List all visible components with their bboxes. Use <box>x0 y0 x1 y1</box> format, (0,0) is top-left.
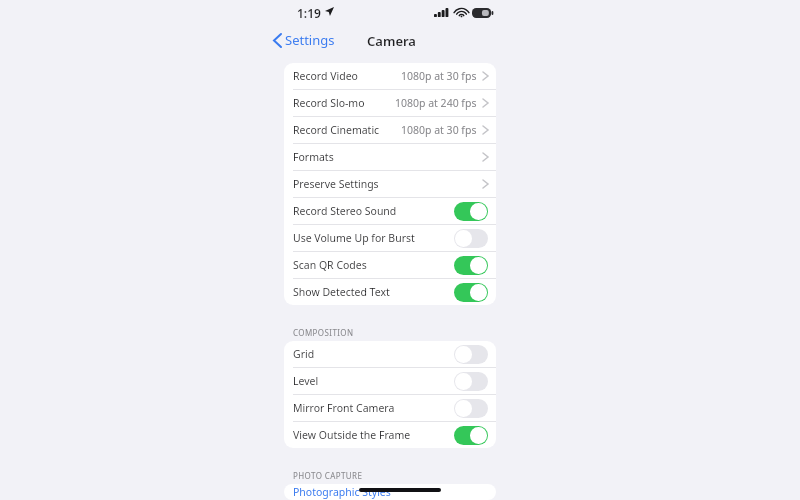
button[interactable]: Record Slo-mo <box>284 90 496 116</box>
staticText: COMPOSITION <box>293 327 354 338</box>
button[interactable]: Preserve Settings <box>284 171 496 197</box>
button[interactable]: View Outside the Frame <box>284 422 496 448</box>
staticText: Photographic Styles <box>293 485 391 499</box>
other: Use Volume Up for Burst off <box>454 229 488 248</box>
button[interactable]: Scan QR Codes <box>284 252 496 278</box>
other: Show Detected Text on <box>454 283 488 302</box>
button[interactable]: Photographic Styles <box>284 484 496 500</box>
staticText: 1080p at 240 fps <box>395 96 477 110</box>
button[interactable]: Settings <box>274 31 335 49</box>
staticText: Record Stereo Sound <box>293 204 397 218</box>
other: Grid off <box>454 345 488 364</box>
staticText: Level <box>293 374 319 388</box>
button[interactable]: Record Cinematic <box>284 117 496 143</box>
other: Level off <box>454 372 488 391</box>
other: View Outside the Frame on <box>454 426 488 445</box>
button[interactable]: Record Video <box>284 63 496 89</box>
staticText: Settings <box>285 31 335 49</box>
button[interactable]: Use Volume Up for Burst <box>284 225 496 251</box>
other: Scan QR Codes on <box>454 256 488 275</box>
other: Mirror Front Camera off <box>454 399 488 418</box>
button[interactable]: Formats <box>284 144 496 170</box>
staticText: 1080p at 30 fps <box>401 69 477 83</box>
button[interactable]: Show Detected Text <box>284 279 496 305</box>
staticText: Camera <box>367 32 416 50</box>
staticText: 1080p at 30 fps <box>401 123 477 137</box>
staticText: View Outside the Frame <box>293 428 411 442</box>
staticText: Use Volume Up for Burst <box>293 231 415 245</box>
staticText: Show Detected Text <box>293 285 390 299</box>
staticText: Grid <box>293 347 315 361</box>
staticText: Record Video <box>293 69 358 83</box>
other: Record Stereo Sound on <box>454 202 488 221</box>
staticText: Mirror Front Camera <box>293 401 395 415</box>
staticText: PHOTO CAPTURE <box>293 470 363 481</box>
staticText: Formats <box>293 150 334 164</box>
button[interactable]: Mirror Front Camera <box>284 395 496 421</box>
staticText: Scan QR Codes <box>293 258 367 272</box>
button[interactable]: Record Stereo Sound <box>284 198 496 224</box>
staticText: Preserve Settings <box>293 177 379 191</box>
staticText: 1:19 <box>297 5 321 21</box>
button[interactable]: Level <box>284 368 496 394</box>
button[interactable]: Grid <box>284 341 496 367</box>
staticText: Record Slo-mo <box>293 96 365 110</box>
staticText: Record Cinematic <box>293 123 380 137</box>
